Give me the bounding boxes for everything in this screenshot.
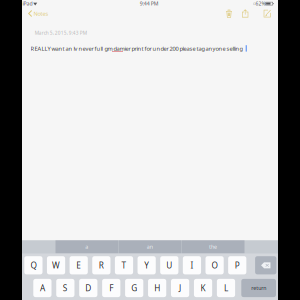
button[interactable]: return: [241, 279, 276, 297]
button[interactable]: P: [228, 256, 246, 274]
button[interactable]: Y: [138, 256, 156, 274]
staticText: 9:44 PM: [140, 0, 159, 7]
staticText: the: [209, 243, 217, 250]
staticText: O: [212, 260, 218, 271]
button[interactable]: E: [70, 256, 88, 274]
button[interactable]: U: [160, 256, 178, 274]
staticText: G: [131, 282, 137, 294]
staticText: U: [166, 260, 172, 271]
staticText: REALLY want an lv never full gm damier p…: [31, 45, 243, 52]
button[interactable]: New note: [264, 9, 271, 17]
staticText: 62%: [255, 0, 265, 7]
button[interactable]: S: [56, 279, 74, 297]
staticText: iPad: [23, 0, 33, 7]
button[interactable]: J: [171, 279, 189, 297]
button[interactable]: R: [92, 256, 110, 274]
staticText: Q: [30, 260, 36, 271]
staticText: K: [201, 282, 206, 294]
staticText: P: [235, 260, 240, 271]
staticText: J: [179, 282, 181, 294]
staticText: E: [76, 260, 81, 271]
button[interactable]: K: [194, 279, 212, 297]
button[interactable]: F: [102, 279, 120, 297]
button[interactable]: Q: [24, 256, 42, 274]
staticText: an: [147, 243, 153, 250]
staticText: S: [63, 282, 68, 294]
button[interactable]: an: [118, 240, 181, 253]
button[interactable]: L: [217, 279, 235, 297]
staticText: March 5, 2015, 9:43 PM: [35, 29, 87, 36]
staticText: D: [85, 282, 91, 294]
button[interactable]: D: [79, 279, 97, 297]
button[interactable]: G: [125, 279, 143, 297]
staticText: Notes: [34, 10, 49, 17]
staticText: R: [99, 260, 104, 271]
button[interactable]: Share: [242, 9, 248, 18]
button[interactable]: H: [148, 279, 166, 297]
staticText: T: [121, 260, 126, 271]
button[interactable]: Notes: [26, 7, 51, 19]
button[interactable]: I: [183, 256, 201, 274]
staticText: a: [85, 243, 88, 250]
button[interactable]: A: [33, 279, 51, 297]
button[interactable]: Delete note: [226, 9, 232, 18]
staticText: A: [40, 282, 45, 294]
staticText: return: [251, 284, 266, 292]
button[interactable]: T: [115, 256, 133, 274]
staticText: H: [154, 282, 160, 294]
button[interactable]: Delete: [255, 256, 276, 274]
staticText: L: [224, 282, 228, 294]
button[interactable]: W: [47, 256, 65, 274]
button[interactable]: a: [55, 240, 118, 253]
staticText: I: [190, 260, 193, 271]
staticText: F: [109, 282, 113, 294]
staticText: Y: [144, 260, 149, 271]
button[interactable]: O: [205, 256, 224, 274]
staticText: W: [52, 260, 60, 271]
button[interactable]: the: [181, 240, 244, 253]
